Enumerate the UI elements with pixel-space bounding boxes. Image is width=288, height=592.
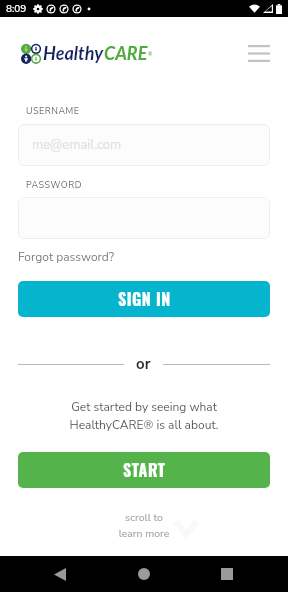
- staticText: scroll to learn more: [18, 510, 270, 541]
- button[interactable]: SIGN IN: [18, 281, 270, 317]
- staticText: USERNAME: [26, 105, 80, 117]
- staticText: CARE: [104, 42, 148, 64]
- staticText: or: [136, 354, 151, 374]
- staticText: Get started by seeing what HealthyCARE® …: [18, 399, 270, 433]
- staticText: Healthy: [43, 42, 104, 64]
- staticText: 8:09: [6, 2, 27, 16]
- staticText: PASSWORD: [26, 179, 82, 191]
- button[interactable]: me@email.com: [18, 124, 270, 166]
- staticText: ®: [148, 51, 153, 57]
- button[interactable]: Recents: [209, 556, 245, 592]
- button[interactable]: [18, 197, 270, 239]
- staticText: START: [123, 458, 166, 482]
- button[interactable]: START: [18, 452, 270, 488]
- button[interactable]: Forgot password?: [18, 249, 115, 265]
- staticText: SIGN IN: [118, 287, 171, 311]
- staticText: me@email.com: [32, 136, 122, 154]
- button[interactable]: Menu: [241, 35, 277, 71]
- button[interactable]: Home: [126, 556, 162, 592]
- button[interactable]: Back: [42, 556, 78, 592]
